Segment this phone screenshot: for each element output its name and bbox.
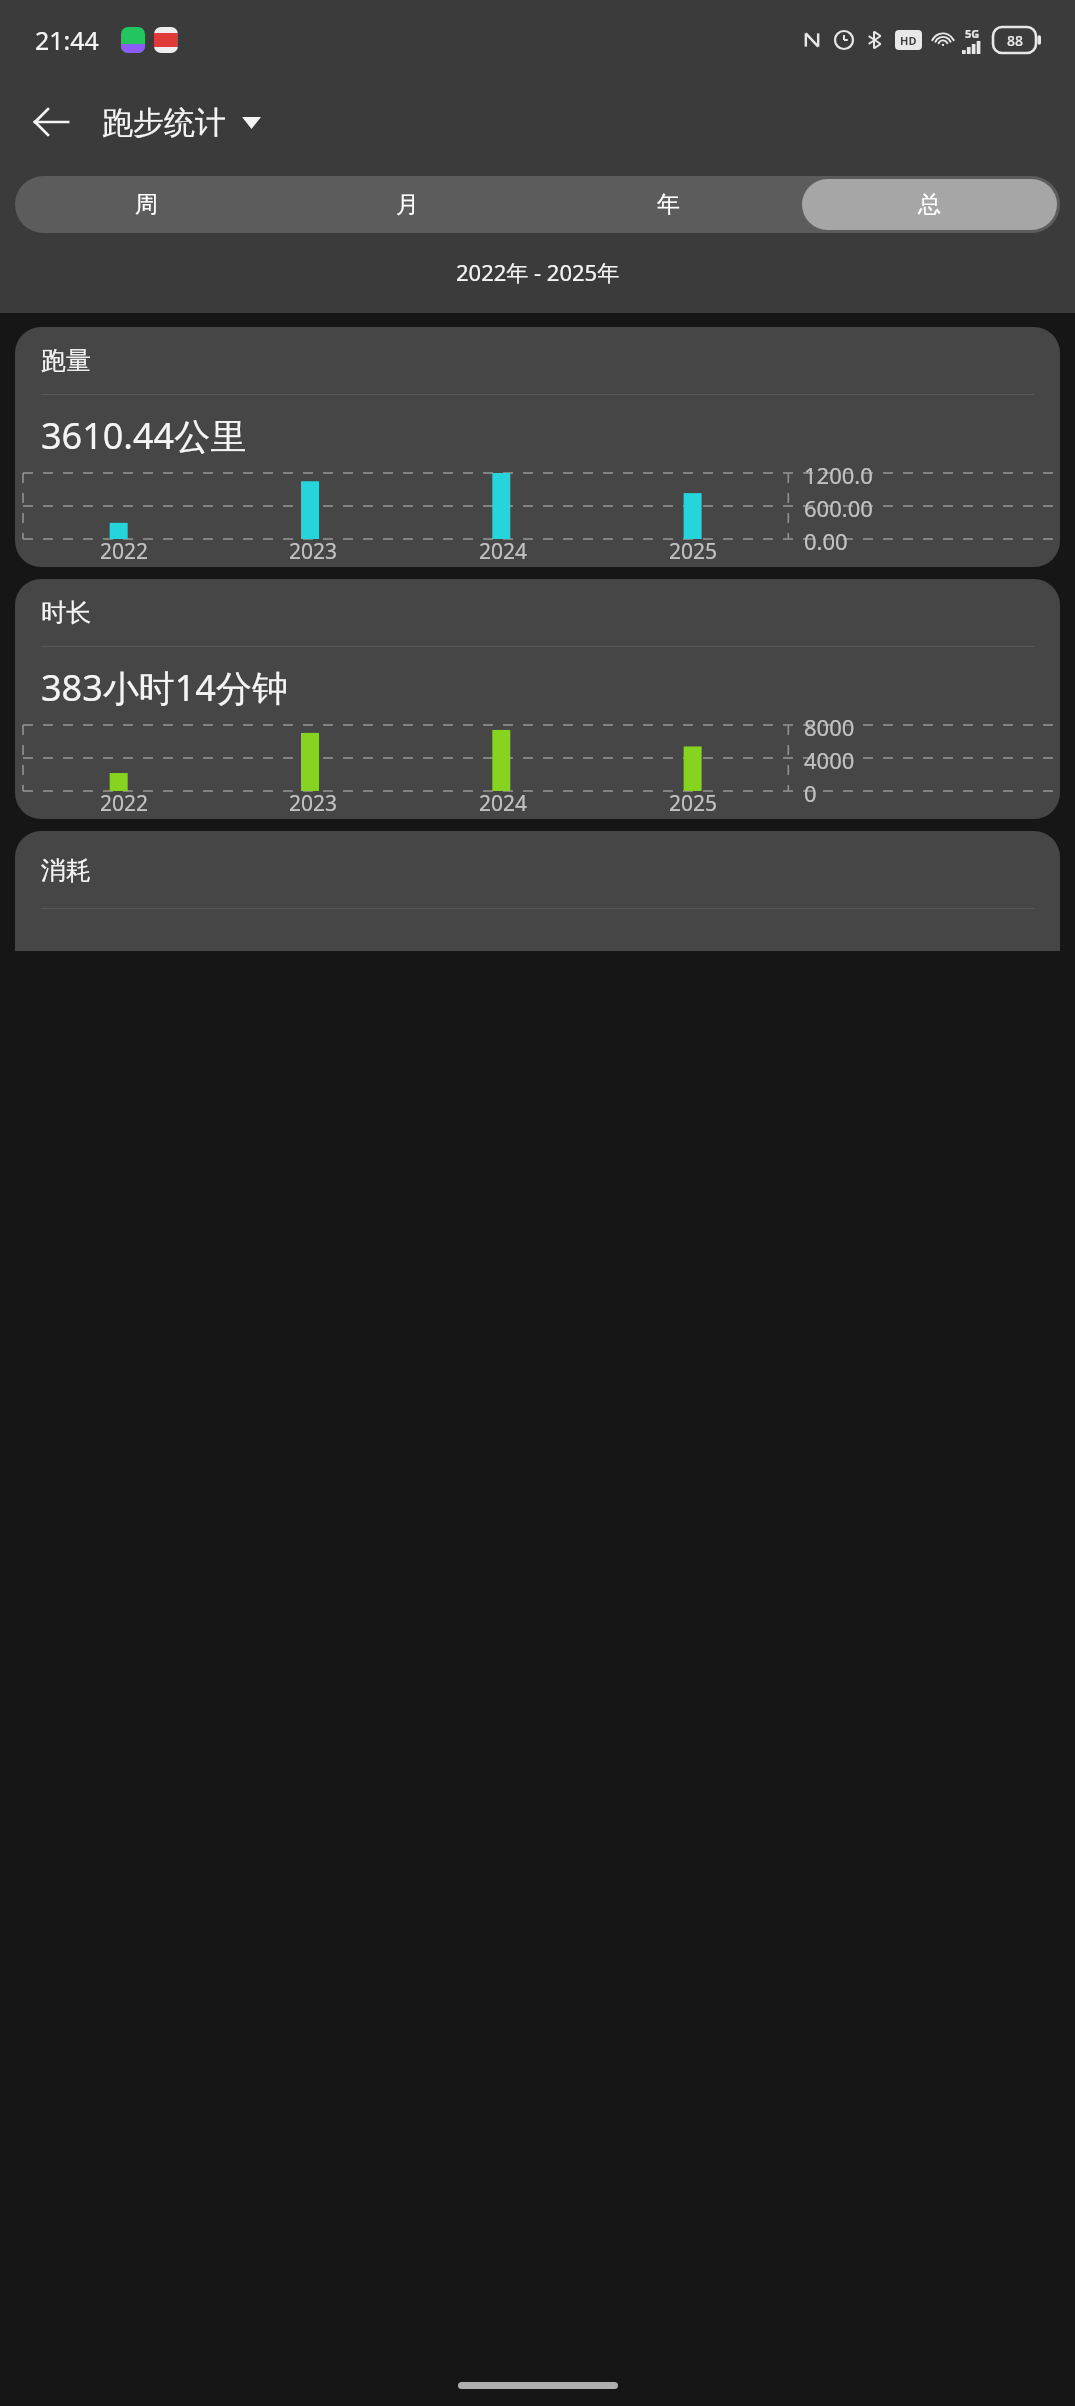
staticText: 跑步统计 xyxy=(102,103,226,142)
staticText: 2022 xyxy=(100,537,149,566)
staticText: 2022年 - 2025年 xyxy=(456,257,620,287)
staticText: 周 xyxy=(135,190,158,219)
button[interactable]: 跑量 xyxy=(15,327,1060,567)
staticText: 月 xyxy=(396,190,419,219)
staticText: 2025 xyxy=(669,537,718,566)
staticText: 1200.0 xyxy=(804,460,873,490)
button[interactable]: Back xyxy=(18,89,84,155)
staticText: 600.00 xyxy=(804,493,873,523)
button[interactable]: 时长 xyxy=(15,579,1060,819)
staticText: HD xyxy=(900,33,917,48)
staticText: 消耗 xyxy=(41,855,91,886)
staticText: 4000 xyxy=(804,745,855,775)
staticText: 21:44 xyxy=(35,23,99,57)
staticText: 2024 xyxy=(479,537,528,566)
button[interactable]: 跑步统计 xyxy=(102,103,261,142)
button[interactable]: 年 xyxy=(541,179,796,230)
staticText: 0 xyxy=(804,778,817,808)
staticText: 总 xyxy=(918,190,941,219)
staticText: 2023 xyxy=(289,537,338,566)
staticText: 8000 xyxy=(804,712,855,742)
staticText: 2022 xyxy=(100,789,149,818)
button[interactable]: 月 xyxy=(280,179,535,230)
staticText: 跑量 xyxy=(41,345,91,376)
button[interactable]: 周 xyxy=(18,179,274,230)
staticText: 0.00 xyxy=(804,526,848,556)
staticText: 2025 xyxy=(669,789,718,818)
staticText: 2024 xyxy=(479,789,528,818)
button[interactable]: 消耗 xyxy=(15,831,1060,951)
staticText: 3610.44公里 xyxy=(41,411,247,460)
staticText: 2023 xyxy=(289,789,338,818)
staticText: 88 xyxy=(1007,31,1024,50)
staticText: 时长 xyxy=(41,597,91,628)
staticText: 383小时14分钟 xyxy=(41,663,288,712)
staticText: 5G xyxy=(965,26,980,41)
button[interactable]: 总 xyxy=(802,179,1057,230)
staticText: 年 xyxy=(657,190,680,219)
